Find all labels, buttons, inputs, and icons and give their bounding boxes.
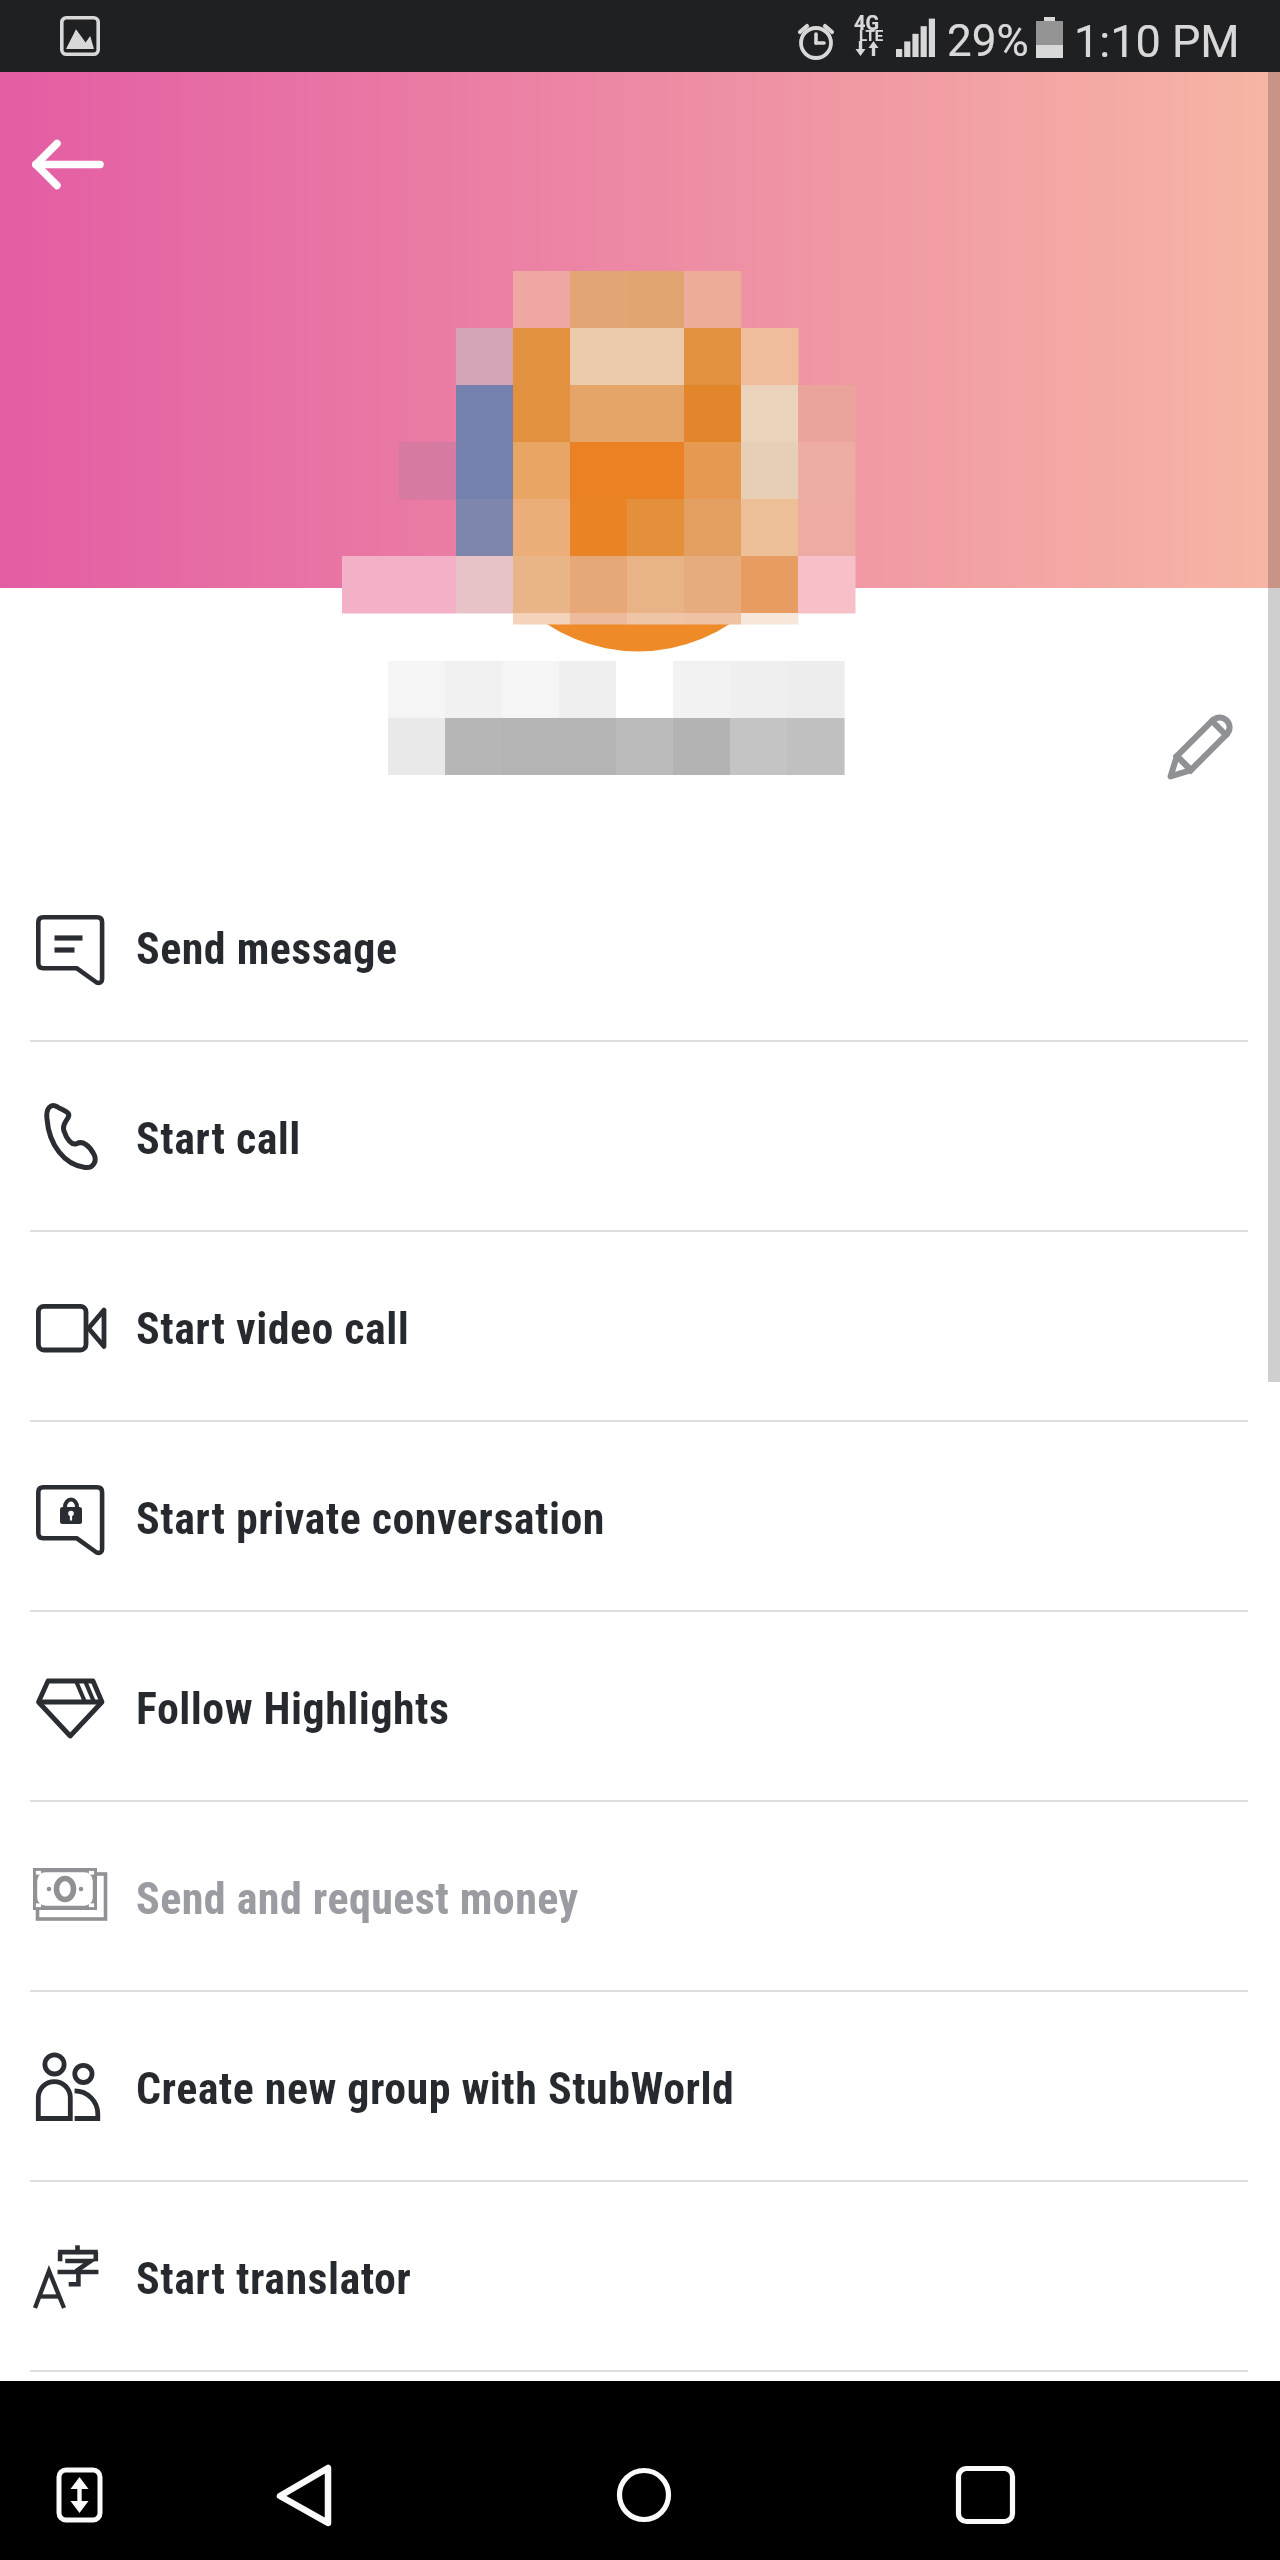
staticText: LTE xyxy=(859,27,884,45)
staticText: Create new group with StubWorld xyxy=(136,2063,735,2115)
staticText: Follow Highlights xyxy=(136,1683,450,1735)
staticText: 1:10 PM xyxy=(1074,15,1240,68)
button[interactable]: Follow Highlights xyxy=(0,1612,1280,1800)
staticText: Start video call xyxy=(136,1303,410,1355)
button[interactable]: Edit xyxy=(1146,691,1256,801)
button[interactable]: Start call xyxy=(0,1042,1280,1230)
staticText: Send message xyxy=(136,923,398,975)
button[interactable]: Create new group with StubWorld xyxy=(0,1992,1280,2180)
staticText: 29% xyxy=(947,15,1029,67)
button[interactable]: Back xyxy=(7,109,127,229)
button[interactable]: Back xyxy=(255,2443,351,2539)
button[interactable]: Recent apps xyxy=(937,2447,1033,2543)
button[interactable]: Home xyxy=(596,2447,692,2543)
staticText: Send and request money xyxy=(136,1873,579,1925)
button[interactable]: Send message xyxy=(0,852,1280,1040)
button[interactable]: Start video call xyxy=(0,1232,1280,1420)
button[interactable]: Send and request money xyxy=(0,1802,1280,1990)
staticText: 4G xyxy=(854,11,880,34)
button[interactable]: Rotate screen xyxy=(34,2445,124,2535)
button[interactable]: Start translator xyxy=(0,2182,1280,2370)
staticText: Start call xyxy=(136,1113,301,1165)
staticText: Start private conversation xyxy=(136,1493,605,1545)
staticText: Start translator xyxy=(136,2253,412,2305)
button[interactable]: Start private conversation xyxy=(0,1422,1280,1610)
